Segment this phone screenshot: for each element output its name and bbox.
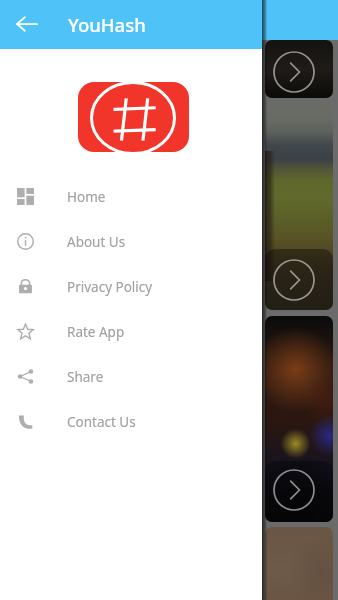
button[interactable]: Home [0,174,262,219]
button[interactable]: About Us [0,219,262,264]
staticText: Contact Us [67,413,136,431]
button[interactable] [265,101,333,310]
staticText: Share [67,368,104,386]
staticText: Rate App [67,323,125,341]
button[interactable]: Share [0,354,262,399]
button[interactable]: Play [273,51,315,93]
staticText: About Us [67,233,126,251]
button[interactable] [265,40,333,98]
button[interactable]: Play [273,259,315,301]
button[interactable]: Contact Us [0,399,262,444]
staticText: Privacy Policy [67,278,153,296]
button[interactable] [265,527,333,600]
button[interactable]: Back [0,0,52,49]
button[interactable]: Play [273,469,315,511]
button[interactable] [265,316,333,522]
staticText: YouHash [68,12,146,37]
staticText: Home [67,188,106,206]
button[interactable]: Privacy Policy [0,264,262,309]
button[interactable]: Rate App [0,309,262,354]
